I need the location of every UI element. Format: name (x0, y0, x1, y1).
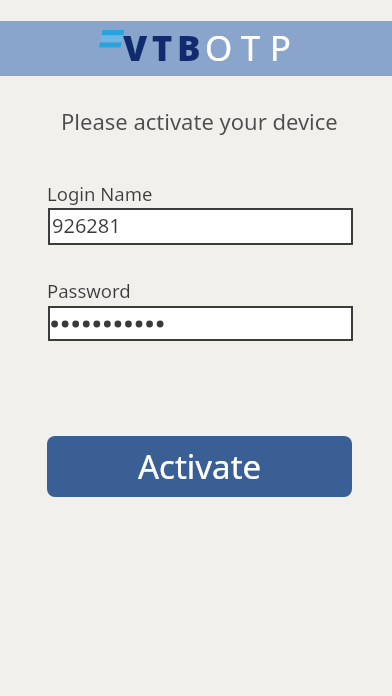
staticText: Activate (138, 444, 262, 489)
button[interactable] (48, 306, 353, 341)
staticText: Please activate your device (61, 106, 338, 136)
staticText: 926281 (52, 212, 121, 239)
staticText: Password (47, 278, 131, 303)
button[interactable]: Activate (47, 436, 352, 497)
staticText: VTB (123, 24, 206, 72)
staticText: Login Name (47, 181, 153, 206)
staticText: OTP (205, 24, 301, 72)
button[interactable]: 926281 (48, 208, 353, 245)
